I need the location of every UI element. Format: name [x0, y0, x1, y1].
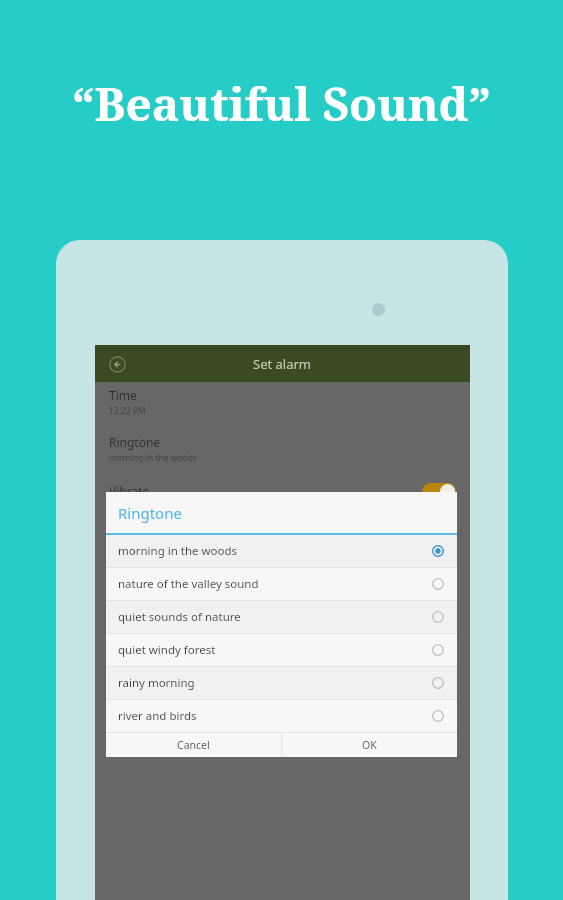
button[interactable]: Time	[95, 382, 470, 421]
button[interactable]: quiet sounds of nature	[106, 601, 457, 633]
staticText: nature of the valley sound	[118, 576, 259, 592]
staticText: “Beautiful Sound”	[72, 72, 491, 135]
staticText: rainy morning	[118, 675, 195, 691]
staticText: river and birds	[118, 708, 197, 724]
button[interactable]: nature of the valley sound	[106, 568, 457, 600]
staticText: Ringtone	[109, 434, 161, 450]
button[interactable]: Cancel	[106, 733, 281, 757]
button[interactable]: Ringtone	[95, 429, 470, 468]
button[interactable]: morning in the woods	[106, 535, 457, 567]
staticText: Set alarm	[253, 355, 312, 373]
button[interactable]: rainy morning	[106, 667, 457, 699]
button[interactable]: quiet windy forest	[106, 634, 457, 666]
staticText: quiet windy forest	[118, 642, 216, 658]
button[interactable]: Back	[104, 351, 130, 377]
staticText: morning in the woods	[109, 452, 197, 464]
button[interactable]: OK	[282, 733, 457, 757]
staticText: Time	[109, 387, 137, 403]
staticText: Cancel	[177, 738, 210, 752]
staticText: morning in the woods	[118, 543, 238, 559]
staticText: quiet sounds of nature	[118, 609, 241, 625]
staticText: Ringtone	[118, 503, 182, 523]
staticText: 12:22 PM	[109, 405, 146, 417]
staticText: Vibrate	[109, 483, 150, 499]
staticText: OK	[362, 738, 377, 752]
button[interactable]: Vibrate	[95, 478, 470, 504]
button[interactable]: river and birds	[106, 700, 457, 732]
